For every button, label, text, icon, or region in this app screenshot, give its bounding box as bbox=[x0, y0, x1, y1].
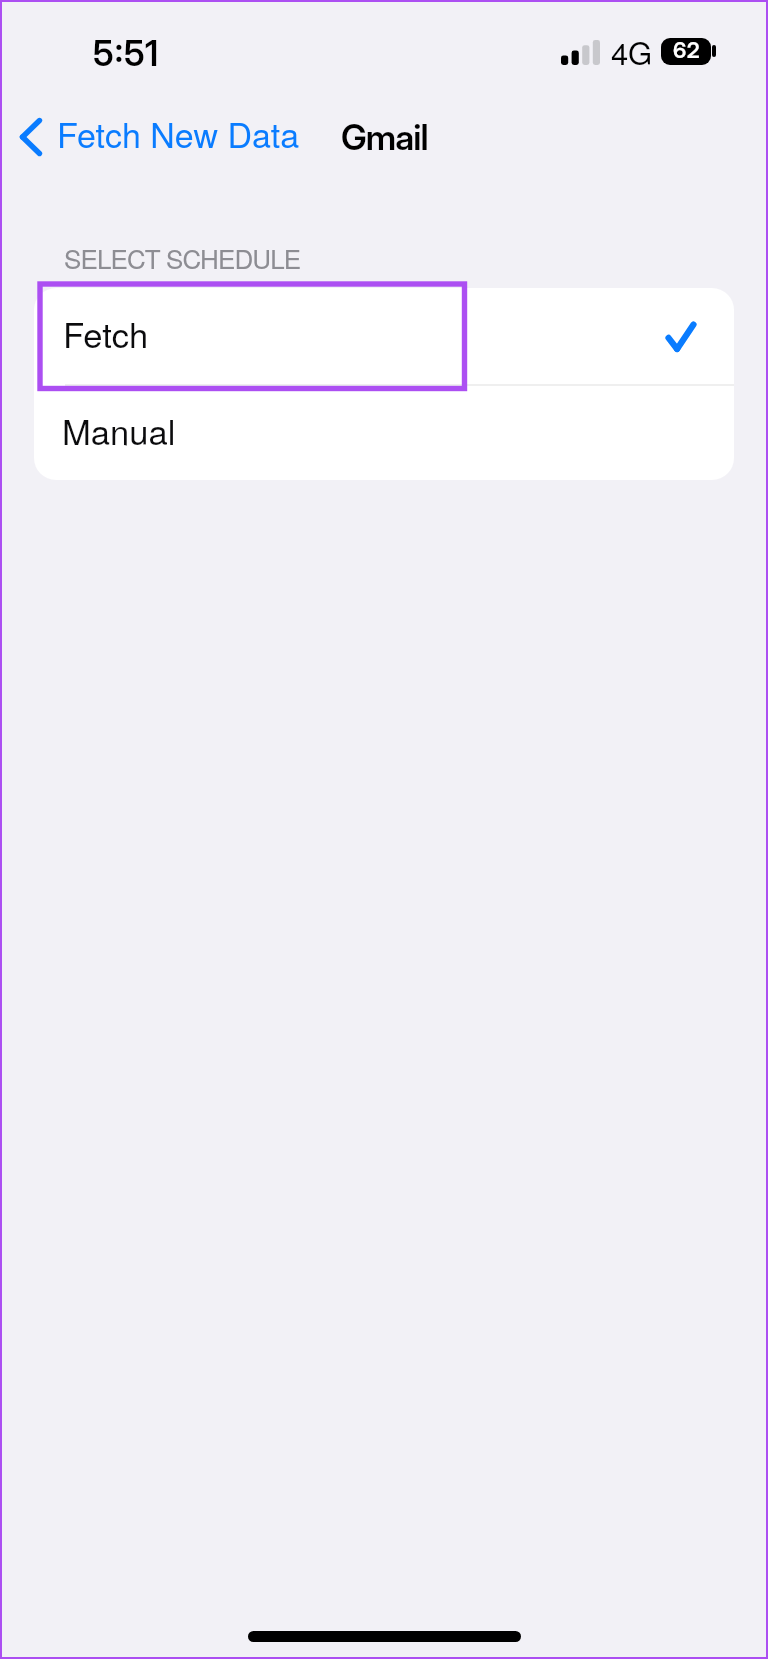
button[interactable]: Back bbox=[12, 101, 310, 173]
other: Back bbox=[20, 118, 42, 156]
button[interactable]: Fetch bbox=[34, 288, 734, 384]
staticText: Gmail bbox=[341, 116, 428, 158]
staticText: Fetch New Data bbox=[57, 109, 300, 158]
staticText: SELECT SCHEDULE bbox=[64, 239, 301, 276]
staticText: Fetch bbox=[63, 308, 149, 358]
staticText: 4G bbox=[611, 29, 652, 73]
staticText: 62 bbox=[673, 38, 700, 64]
button[interactable]: Manual bbox=[34, 386, 734, 480]
staticText: Manual bbox=[62, 405, 176, 455]
other: Selected bbox=[667, 323, 695, 351]
staticText: 5:51 bbox=[93, 32, 160, 74]
other: Cellular signal bbox=[561, 39, 601, 65]
